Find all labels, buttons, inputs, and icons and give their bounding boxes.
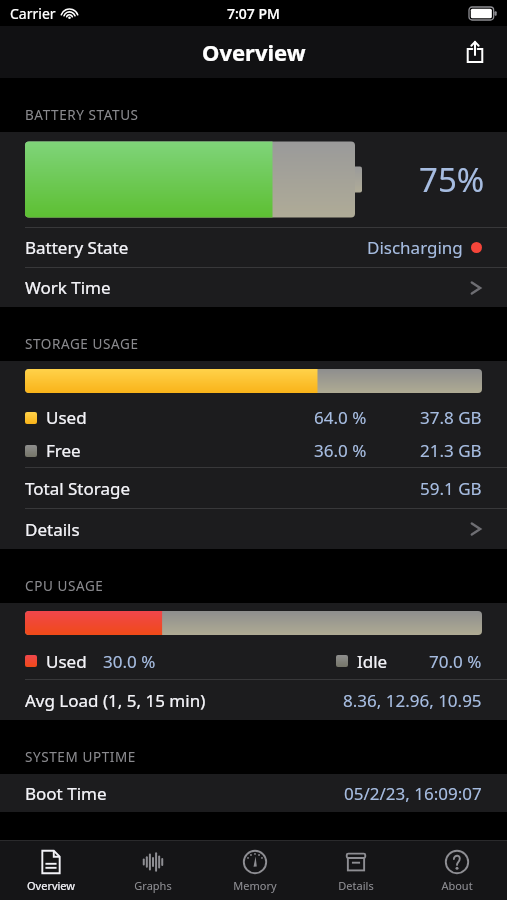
- staticText: Discharging: [367, 236, 463, 259]
- staticText: 59.1 GB: [420, 477, 482, 500]
- staticText: Details: [338, 878, 374, 893]
- staticText: Work Time: [25, 276, 111, 299]
- staticText: Used: [46, 406, 87, 429]
- staticText: 64.0 %: [314, 406, 367, 429]
- button[interactable]: About: [406, 841, 507, 900]
- staticText: 37.8 GB: [420, 406, 482, 429]
- button[interactable]: Overview: [0, 841, 102, 900]
- staticText: Avg Load (1, 5, 15 min): [25, 689, 206, 712]
- staticText: Carrier: [10, 4, 56, 23]
- staticText: 30.0 %: [103, 650, 156, 673]
- staticText: SYSTEM UPTIME: [25, 748, 136, 766]
- staticText: Boot Time: [25, 782, 107, 805]
- staticText: 70.0 %: [429, 650, 482, 673]
- staticText: 05/2/23, 16:09:07: [344, 782, 482, 805]
- button[interactable]: Boot Time: [0, 774, 507, 812]
- staticText: BATTERY STATUS: [25, 106, 139, 124]
- staticText: CPU USAGE: [25, 577, 104, 595]
- button[interactable]: Total Storage: [0, 468, 507, 508]
- staticText: Used: [46, 650, 87, 673]
- button[interactable]: Share: [457, 34, 493, 70]
- button[interactable]: Details: [0, 509, 507, 549]
- staticText: Total Storage: [25, 477, 131, 500]
- staticText: Graphs: [134, 878, 172, 893]
- staticText: Overview: [202, 37, 306, 67]
- staticText: Idle: [357, 650, 388, 673]
- staticText: 36.0 %: [314, 439, 367, 462]
- button[interactable]: Battery State: [0, 228, 507, 267]
- button[interactable]: Avg Load (1, 5, 15 min): [0, 680, 507, 720]
- staticText: Memory: [233, 878, 277, 893]
- staticText: Battery State: [25, 236, 129, 259]
- staticText: STORAGE USAGE: [25, 335, 139, 353]
- button[interactable]: Details: [305, 841, 406, 900]
- button[interactable]: Memory: [204, 841, 305, 900]
- button[interactable]: Graphs: [102, 841, 204, 900]
- button[interactable]: Work Time: [0, 268, 507, 307]
- staticText: 21.3 GB: [420, 439, 482, 462]
- staticText: 7:07 PM: [227, 4, 280, 23]
- staticText: Overview: [27, 878, 75, 893]
- staticText: 8.36, 12.96, 10.95: [343, 689, 482, 712]
- staticText: About: [441, 878, 473, 893]
- staticText: Details: [25, 518, 80, 541]
- staticText: Free: [46, 439, 81, 462]
- staticText: 75%: [419, 157, 485, 202]
